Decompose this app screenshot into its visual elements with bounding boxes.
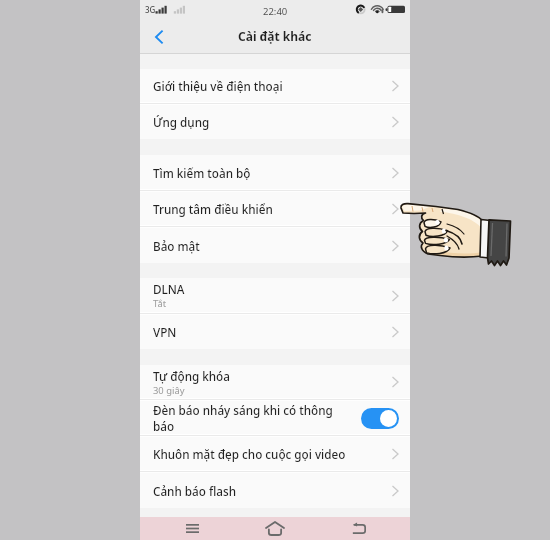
staticText: Tìm kiếm toàn bộ	[153, 165, 251, 181]
staticText: Cảnh báo flash	[153, 483, 236, 499]
button[interactable]: Tự động khóa	[140, 365, 410, 399]
staticText: Ứng dụng	[153, 114, 210, 130]
button[interactable]: VPN	[140, 315, 410, 349]
button[interactable]: Ứng dụng	[140, 105, 410, 139]
staticText: Đèn báo nháy sáng khi có thông	[153, 402, 333, 418]
button[interactable]: Trung tâm điều khiển	[140, 192, 410, 226]
button[interactable]: Đèn báo nháy sáng khi có thông	[140, 401, 410, 435]
button[interactable]: Back	[147, 25, 171, 49]
staticText: 3G	[145, 4, 156, 15]
button[interactable]: Khuôn mặt đẹp cho cuộc gọi video	[140, 437, 410, 471]
button[interactable]: Bảo mật	[140, 228, 410, 263]
button[interactable]: Toggle notification light	[361, 408, 399, 429]
staticText: Tự động khóa	[153, 368, 230, 384]
staticText: 30 giây	[153, 384, 185, 397]
staticText: Trung tâm điều khiển	[153, 201, 273, 217]
staticText: VPN	[153, 324, 177, 340]
button[interactable]: Back	[343, 517, 374, 540]
staticText: 22:40	[263, 5, 288, 18]
staticText: báo	[153, 418, 175, 434]
staticText: DLNA	[153, 281, 185, 297]
button[interactable]: Tìm kiếm toàn bộ	[140, 155, 410, 190]
staticText: Khuôn mặt đẹp cho cuộc gọi video	[153, 446, 346, 462]
button[interactable]: Menu	[177, 517, 208, 540]
staticText: Cài đặt khác	[238, 28, 312, 44]
staticText: Giới thiệu về điện thoại	[153, 78, 283, 94]
staticText: Tắt	[153, 297, 167, 310]
button[interactable]: DLNA	[140, 278, 410, 313]
staticText: Bảo mật	[153, 238, 200, 254]
button[interactable]: Home	[258, 517, 292, 540]
button[interactable]: Cảnh báo flash	[140, 473, 410, 508]
button[interactable]: Giới thiệu về điện thoại	[140, 69, 410, 103]
